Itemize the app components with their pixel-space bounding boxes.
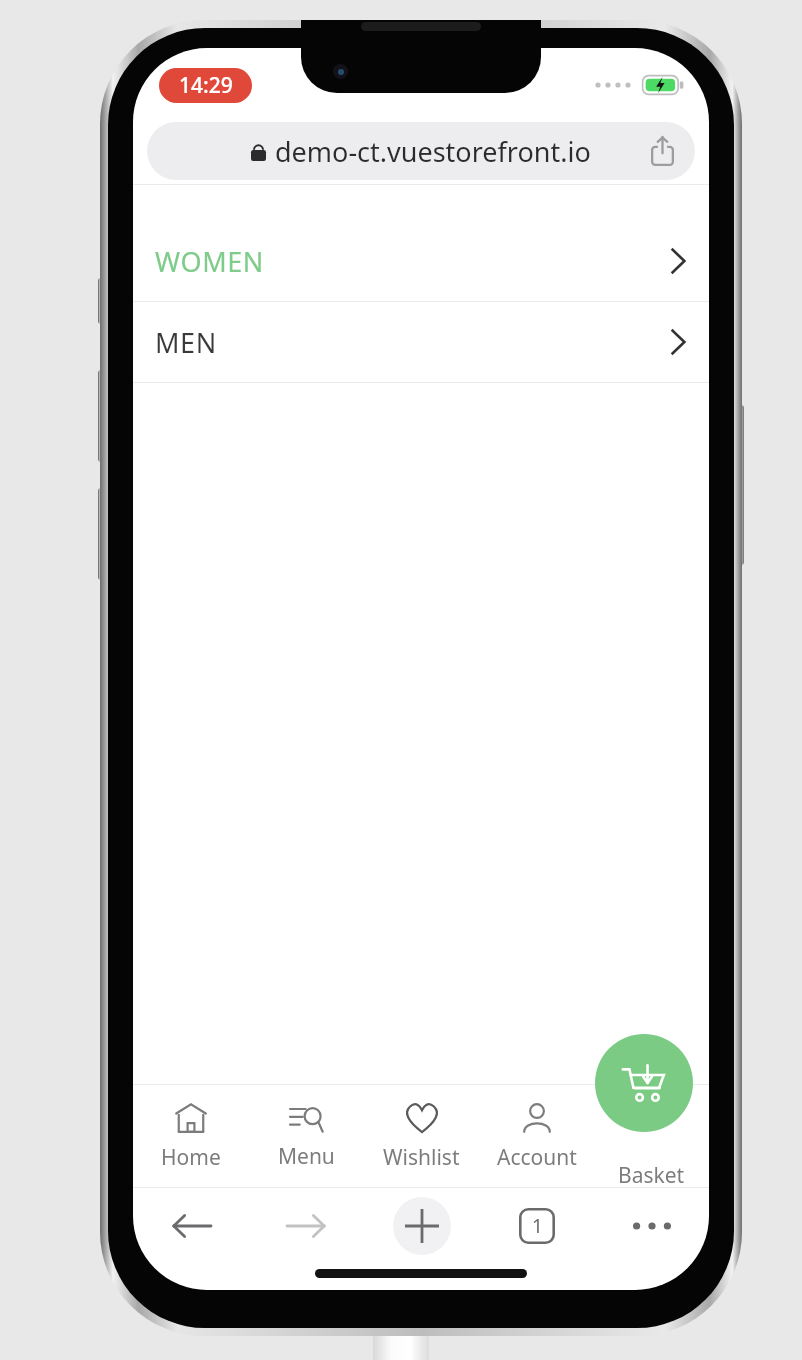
button[interactable]: Tabs [479, 1188, 594, 1264]
staticText: Menu [278, 1142, 335, 1171]
staticText: demo-ct.vuestorefront.io [275, 133, 591, 170]
staticText: 14:29 [179, 71, 233, 100]
button[interactable]: New tab [364, 1188, 479, 1264]
button[interactable]: WOMEN [133, 221, 709, 301]
staticText: Account [497, 1143, 577, 1172]
button[interactable]: Share [639, 128, 685, 174]
button[interactable]: Back [133, 1188, 249, 1264]
staticText: MEN [155, 324, 217, 361]
button[interactable]: demo-ct.vuestorefront.io [147, 122, 695, 180]
staticText: Home [161, 1143, 221, 1172]
button[interactable]: MEN [133, 302, 709, 382]
button[interactable]: Menu [249, 1085, 364, 1188]
button[interactable]: More [594, 1188, 709, 1264]
button[interactable]: Account [479, 1085, 594, 1188]
button[interactable]: Wishlist [364, 1085, 479, 1188]
staticText: Wishlist [383, 1143, 460, 1172]
button[interactable]: Basket [595, 1034, 693, 1132]
staticText: 1 [532, 1213, 543, 1239]
button[interactable]: Forward [249, 1188, 364, 1264]
staticText: Basket [618, 1161, 685, 1190]
staticText: WOMEN [155, 243, 264, 280]
button[interactable]: Home [133, 1085, 249, 1188]
